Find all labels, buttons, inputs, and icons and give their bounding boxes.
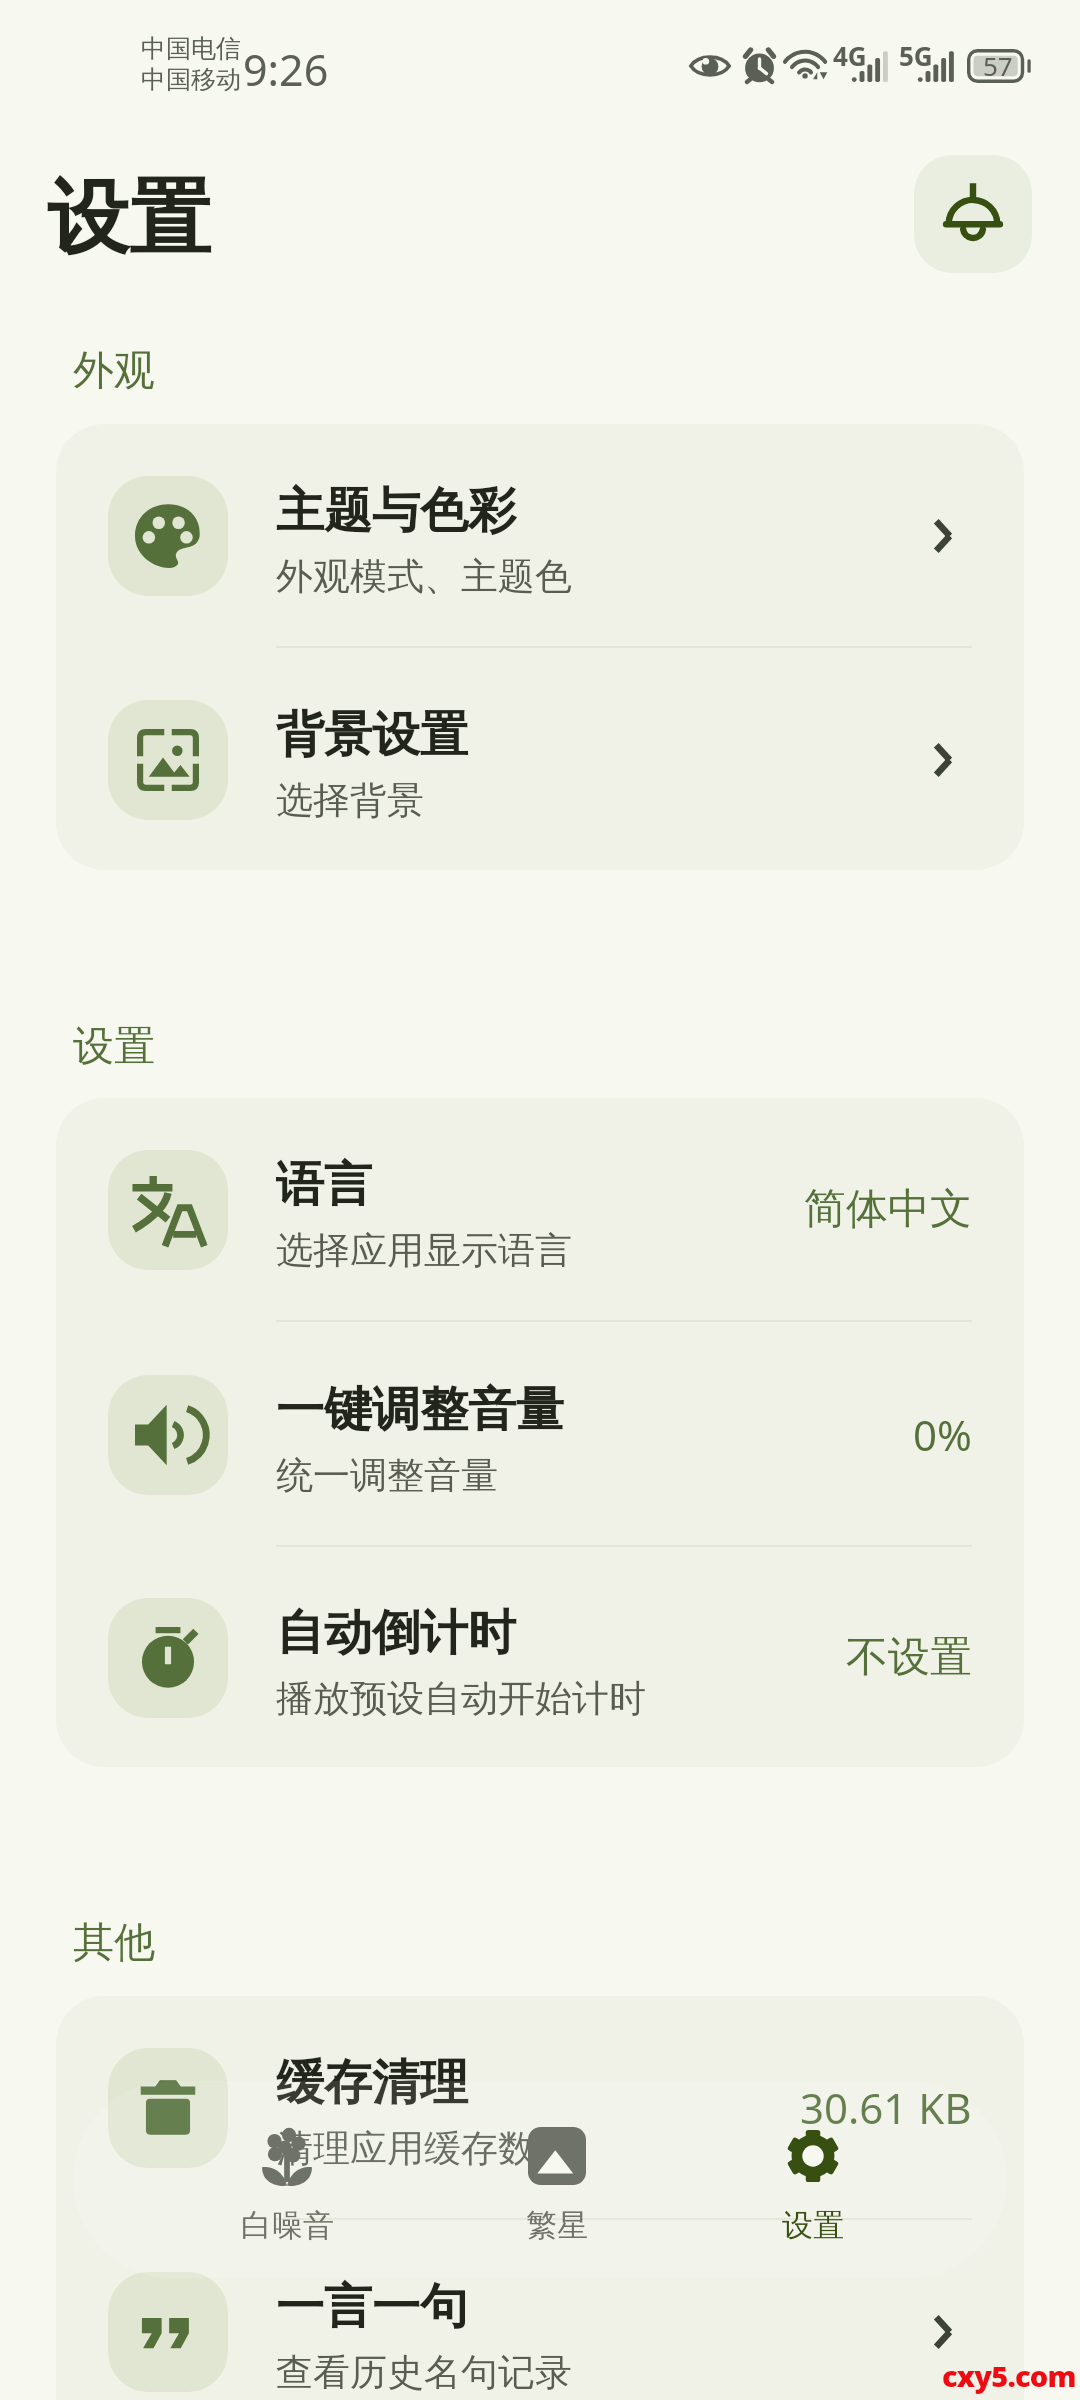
staticText: 4G bbox=[833, 38, 867, 73]
button[interactable]: 一言一句 bbox=[56, 2221, 1024, 2400]
staticText: 外观 bbox=[73, 345, 155, 397]
staticText: 中国移动 bbox=[141, 64, 241, 95]
button[interactable]: 白噪音 bbox=[167, 2121, 407, 2271]
button[interactable]: 繁星 bbox=[437, 2121, 677, 2271]
staticText: 查看历史名句记录 bbox=[276, 2349, 572, 2396]
staticText: 背景设置 bbox=[276, 705, 468, 765]
staticText: 自动倒计时 bbox=[276, 1603, 516, 1663]
staticText: 语言 bbox=[276, 1155, 372, 1215]
button[interactable]: 主题与色彩 bbox=[56, 424, 1024, 647]
staticText: 主题与色彩 bbox=[276, 481, 516, 541]
staticText: 选择背景 bbox=[276, 777, 424, 824]
button[interactable]: 缓存清理 bbox=[56, 1996, 1024, 2219]
staticText: 0% bbox=[913, 1406, 972, 1463]
staticText: 不设置 bbox=[846, 1631, 972, 1684]
staticText: 一键调整音量 bbox=[276, 1380, 564, 1440]
staticText: 30.61 KB bbox=[800, 2079, 972, 2136]
staticText: 5G bbox=[899, 38, 933, 73]
staticText: cxy5.com bbox=[942, 2356, 1076, 2395]
staticText: 中国电信 bbox=[141, 33, 241, 64]
staticText: 其他 bbox=[73, 1917, 155, 1969]
staticText: 白噪音 bbox=[241, 2206, 334, 2245]
staticText: 设置 bbox=[47, 167, 211, 270]
staticText: 繁星 bbox=[526, 2206, 588, 2245]
staticText: 9:26 bbox=[243, 40, 329, 99]
button[interactable]: 一键调整音量 bbox=[56, 1323, 1024, 1546]
button[interactable]: Night light bbox=[914, 155, 1032, 273]
staticText: 缓存清理 bbox=[276, 2053, 468, 2113]
button[interactable]: 背景设置 bbox=[56, 649, 1024, 870]
staticText: 清理应用缓存数据 bbox=[276, 2125, 572, 2172]
staticText: 统一调整音量 bbox=[276, 1452, 498, 1499]
staticText: 播放预设自动开始计时 bbox=[276, 1675, 646, 1722]
button[interactable]: 设置 bbox=[693, 2121, 933, 2271]
staticText: 设置 bbox=[782, 2206, 844, 2245]
staticText: 一言一句 bbox=[276, 2277, 468, 2337]
button[interactable]: 语言 bbox=[56, 1098, 1024, 1321]
staticText: 外观模式、主题色 bbox=[276, 553, 572, 600]
staticText: 简体中文 bbox=[804, 1183, 972, 1236]
staticText: 57 bbox=[983, 48, 1013, 83]
staticText: 设置 bbox=[73, 1021, 155, 1073]
button[interactable]: 自动倒计时 bbox=[56, 1548, 1024, 1767]
staticText: 选择应用显示语言 bbox=[276, 1227, 572, 1274]
